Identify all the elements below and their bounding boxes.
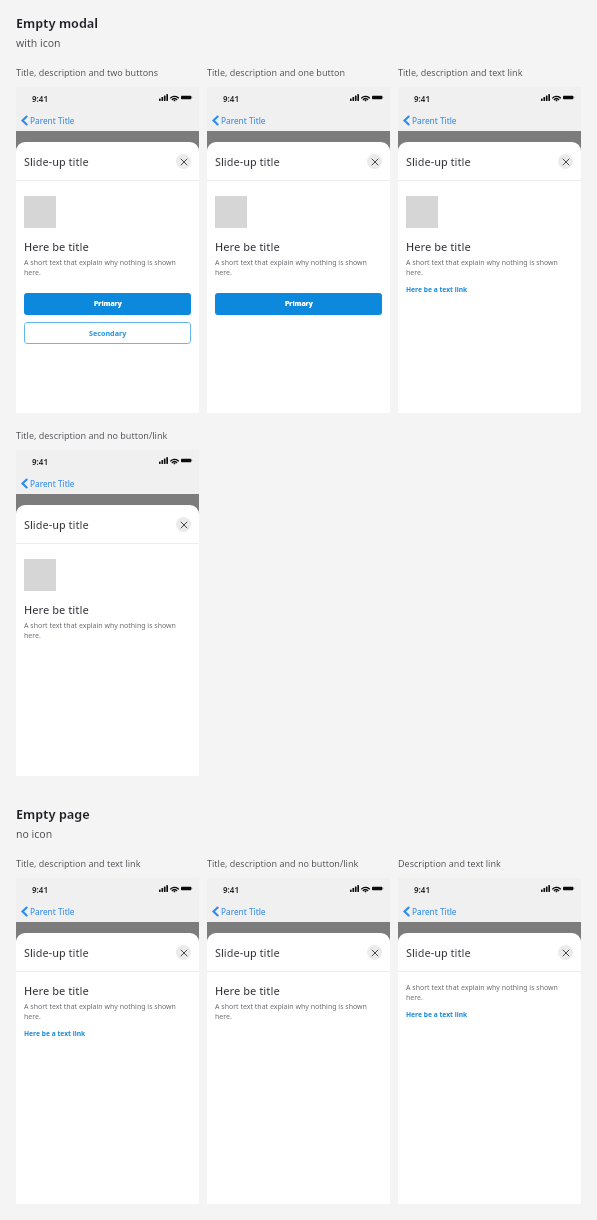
staticText: Title, description and text link xyxy=(16,857,141,869)
staticText: A short text that explain why nothing is… xyxy=(215,1002,382,1022)
staticText: A short text that explain why nothing is… xyxy=(24,1002,191,1022)
staticText: Parent Title xyxy=(30,906,75,917)
staticText: no icon xyxy=(16,827,53,841)
staticText: A short text that explain why nothing is… xyxy=(406,983,573,1003)
staticText: Parent Title xyxy=(412,906,457,917)
staticText: Title, description and text link xyxy=(398,66,523,78)
staticText: A short text that explain why nothing is… xyxy=(24,621,191,641)
staticText: A short text that explain why nothing is… xyxy=(24,258,191,278)
button[interactable]: Parent Title xyxy=(211,115,266,126)
button[interactable]: Parent Title xyxy=(20,478,75,489)
staticText: Empty modal xyxy=(16,15,99,32)
staticText: Description and text link xyxy=(398,857,501,869)
button[interactable]: Here be a text link xyxy=(24,1029,86,1038)
staticText: Slide-up title xyxy=(406,945,471,960)
staticText: Title, description and two buttons xyxy=(16,66,158,78)
button[interactable]: Close xyxy=(558,154,573,169)
button[interactable]: Close xyxy=(176,945,191,960)
staticText: Title, description and no button/link xyxy=(207,857,359,869)
staticText: Slide-up title xyxy=(24,154,89,169)
button[interactable]: Close xyxy=(367,945,382,960)
staticText: Primary xyxy=(285,299,313,309)
staticText: Here be title xyxy=(24,602,89,617)
staticText: Here be title xyxy=(406,239,471,254)
staticText: Slide-up title xyxy=(24,945,89,960)
staticText: Here be title xyxy=(215,983,280,998)
staticText: Secondary xyxy=(89,328,127,338)
staticText: Primary xyxy=(94,299,122,309)
staticText: 9:41 xyxy=(414,93,430,104)
button[interactable]: Close xyxy=(558,945,573,960)
staticText: 9:41 xyxy=(223,93,239,104)
staticText: 9:41 xyxy=(414,884,430,895)
staticText: Slide-up title xyxy=(406,154,471,169)
staticText: with icon xyxy=(16,36,61,50)
staticText: Slide-up title xyxy=(24,517,89,532)
staticText: Parent Title xyxy=(412,115,457,126)
button[interactable]: Close xyxy=(176,517,191,532)
button[interactable]: Parent Title xyxy=(20,115,75,126)
button[interactable]: Here be a text link xyxy=(406,285,468,294)
button[interactable]: Secondary xyxy=(24,322,191,344)
staticText: 9:41 xyxy=(32,456,48,467)
staticText: Parent Title xyxy=(30,478,75,489)
button[interactable]: Parent Title xyxy=(402,906,457,917)
staticText: 9:41 xyxy=(223,884,239,895)
staticText: Here be title xyxy=(24,239,89,254)
staticText: A short text that explain why nothing is… xyxy=(215,258,382,278)
staticText: Slide-up title xyxy=(215,154,280,169)
staticText: Parent Title xyxy=(221,115,266,126)
staticText: Parent Title xyxy=(221,906,266,917)
staticText: 9:41 xyxy=(32,93,48,104)
button[interactable]: Parent Title xyxy=(402,115,457,126)
button[interactable]: Close xyxy=(176,154,191,169)
staticText: Empty page xyxy=(16,806,90,823)
staticText: Title, description and no button/link xyxy=(16,429,168,441)
staticText: Here be title xyxy=(215,239,280,254)
staticText: 9:41 xyxy=(32,884,48,895)
button[interactable]: Parent Title xyxy=(211,906,266,917)
button[interactable]: Primary xyxy=(24,293,191,315)
button[interactable]: Close xyxy=(367,154,382,169)
staticText: Slide-up title xyxy=(215,945,280,960)
staticText: Parent Title xyxy=(30,115,75,126)
button[interactable]: Primary xyxy=(215,293,382,315)
button[interactable]: Here be a text link xyxy=(406,1010,468,1019)
button[interactable]: Parent Title xyxy=(20,906,75,917)
staticText: A short text that explain why nothing is… xyxy=(406,258,573,278)
staticText: Here be title xyxy=(24,983,89,998)
staticText: Title, description and one button xyxy=(207,66,345,78)
